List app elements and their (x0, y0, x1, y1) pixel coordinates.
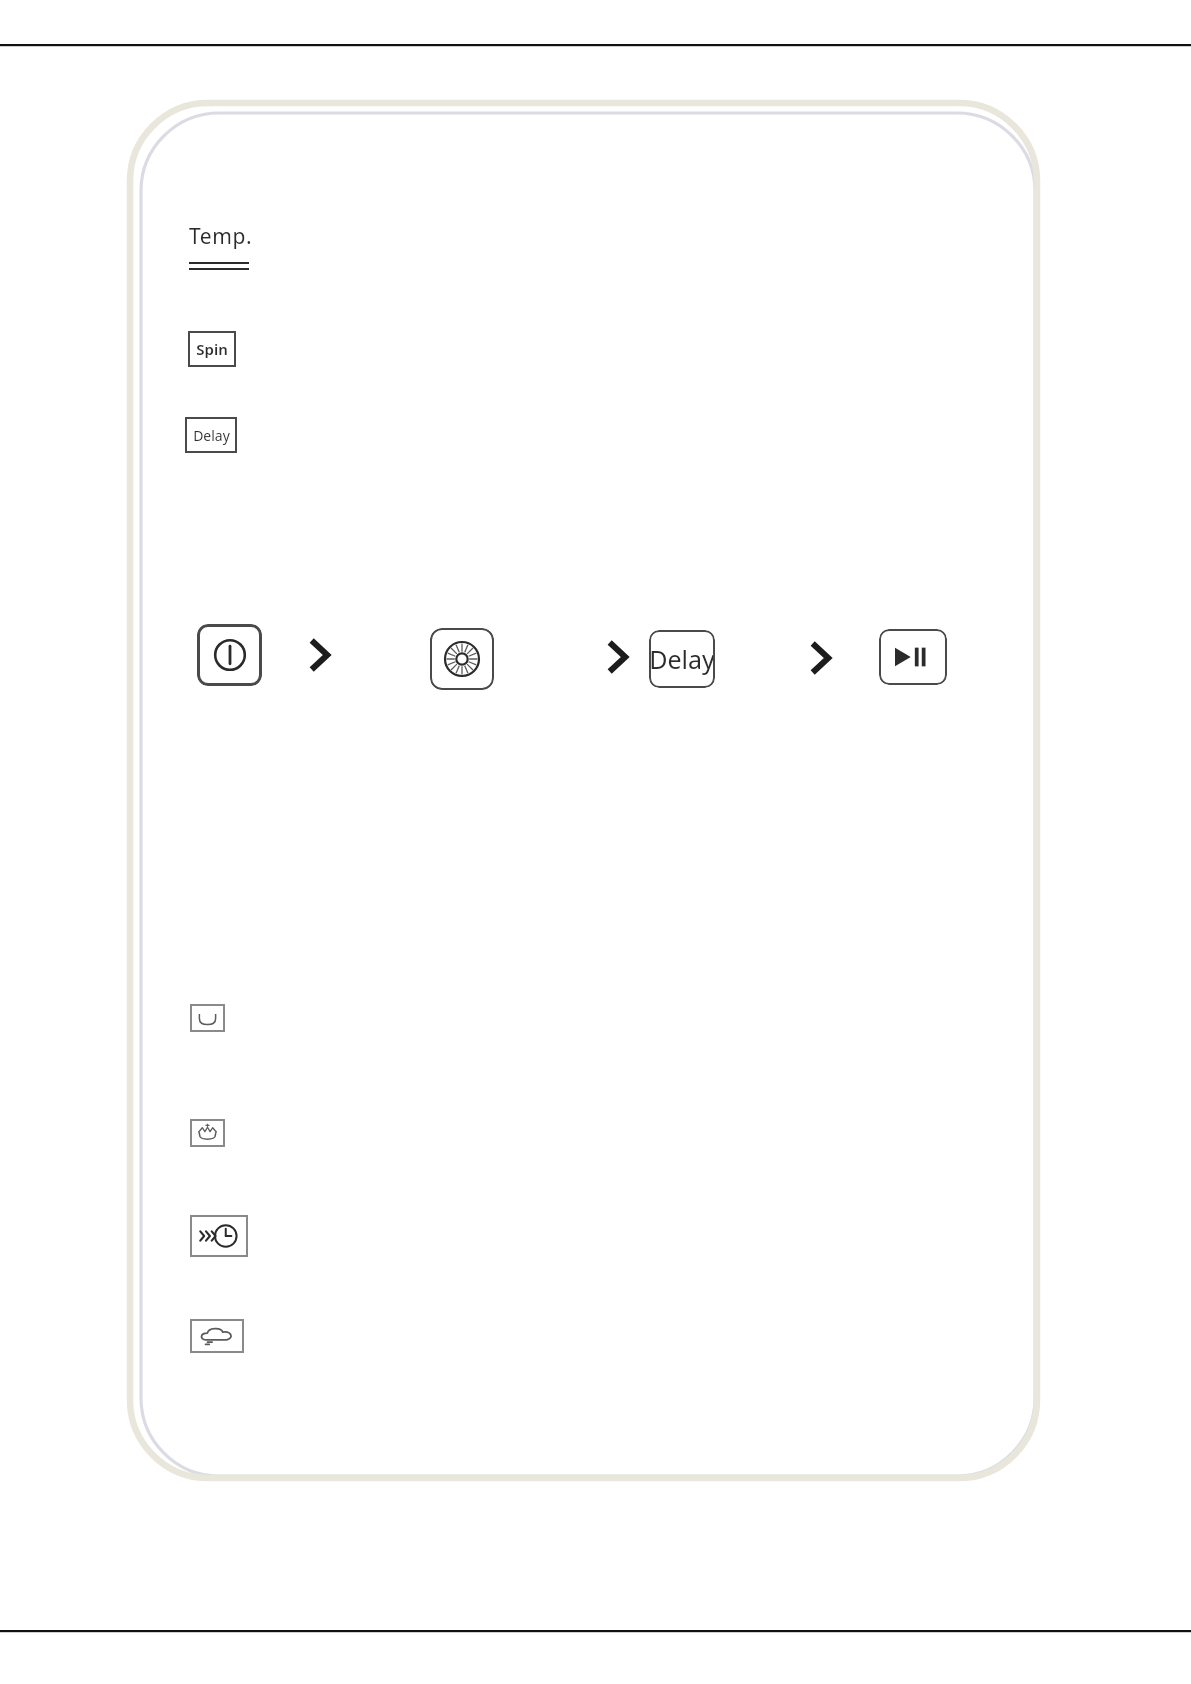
staticText: Delay (193, 426, 230, 445)
button[interactable]: Start or pause (879, 629, 947, 685)
staticText: Delay (649, 642, 715, 676)
button[interactable]: Power (197, 624, 262, 686)
button[interactable]: Delay (649, 630, 715, 688)
button[interactable]: Hand wash (190, 1119, 225, 1147)
button[interactable]: Quick wash (190, 1215, 248, 1257)
button[interactable]: Program dial (430, 628, 494, 690)
button[interactable]: Delay (185, 417, 237, 453)
button[interactable]: Spin (188, 331, 236, 367)
staticText: Spin (196, 339, 228, 359)
button[interactable]: Wash (190, 1004, 225, 1032)
button[interactable]: Temp. (189, 222, 253, 271)
button[interactable]: Steam (190, 1319, 244, 1353)
staticText: Temp. (189, 222, 253, 251)
